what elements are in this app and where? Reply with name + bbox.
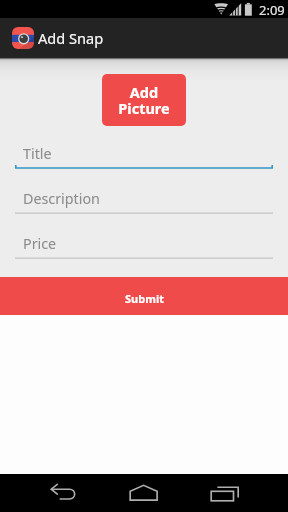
staticText: Description (23, 189, 100, 208)
button[interactable]: Submit (0, 277, 288, 315)
staticText: Price (23, 234, 57, 253)
button[interactable]: Recents (201, 474, 249, 512)
button[interactable]: Add Picture (102, 74, 186, 126)
staticText: Add Picture (118, 82, 170, 119)
button[interactable]: Home (120, 474, 168, 512)
staticText: 2:09 (259, 1, 285, 19)
button[interactable]: Back (40, 474, 88, 512)
staticText: Submit (125, 291, 164, 306)
staticText: Title (23, 144, 52, 163)
staticText: Add Snap (38, 28, 104, 48)
